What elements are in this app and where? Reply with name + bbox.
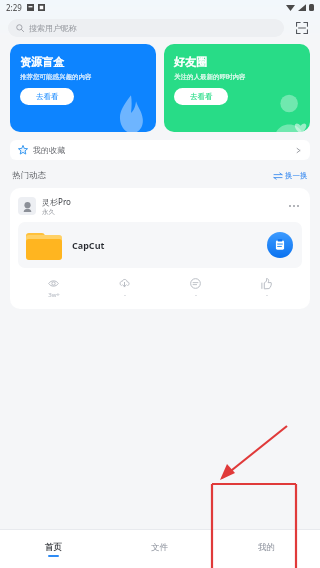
button[interactable]: - [89,276,160,301]
button[interactable]: 资源盲盒 [10,44,156,132]
button[interactable]: CapCut [18,222,302,268]
staticText: 我的 [258,542,275,553]
staticText: 去看看 [36,92,59,101]
button[interactable]: 我的 [213,530,320,568]
button[interactable]: - [160,276,231,301]
staticText: CapCut [72,239,105,251]
staticText: 推荐您可能感兴趣的内容 [20,73,92,81]
staticText: - [124,291,126,299]
button[interactable]: Scan QR code [292,18,312,38]
button[interactable]: More options [286,198,302,214]
button[interactable]: - [231,276,302,301]
staticText: 关注的人最新的即时内容 [174,73,246,81]
staticText: 永久 [42,208,55,216]
button[interactable]: 好友圈 [164,44,310,132]
staticText: - [195,291,197,299]
button[interactable]: 我的收藏 [10,140,310,160]
staticText: 换一换 [285,171,308,180]
button[interactable]: 去看看 [20,88,74,105]
staticText: 首页 [45,542,62,553]
button[interactable]: 首页 [0,530,106,568]
button[interactable]: 灵杉Pro [10,188,310,309]
staticText: 热门动态 [12,170,46,181]
button[interactable]: 换一换 [274,171,308,180]
staticText: 文件 [151,542,168,553]
button[interactable]: 文件 [106,530,213,568]
button[interactable]: 搜索用户昵称 [8,19,284,37]
staticText: - [266,291,268,299]
button[interactable]: 去看看 [174,88,228,105]
staticText: 灵杉Pro [42,196,71,207]
staticText: 好友圈 [174,55,207,69]
staticText: 去看看 [190,92,213,101]
staticText: 我的收藏 [33,145,65,155]
button[interactable]: 3w+ [18,276,89,301]
staticText: 3w+ [48,291,60,299]
staticText: 搜索用户昵称 [29,23,77,33]
button[interactable]: Save file [267,232,293,258]
staticText: 资源盲盒 [20,55,64,69]
staticText: 2:29 [6,2,22,13]
